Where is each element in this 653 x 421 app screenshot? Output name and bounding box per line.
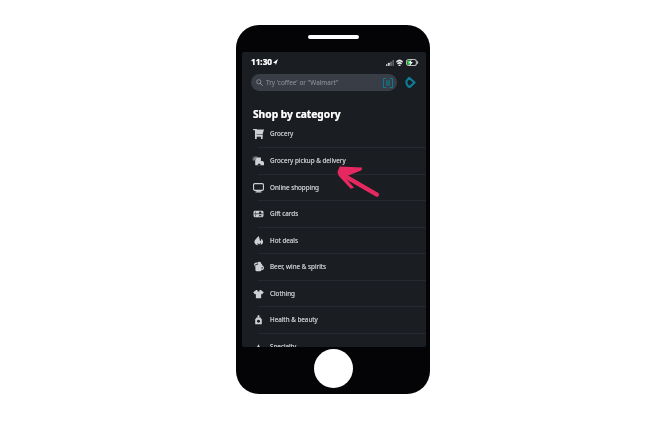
button[interactable]: Specialty bbox=[242, 333, 426, 347]
button[interactable]: Try 'coffee' or "Walmart" bbox=[251, 74, 397, 91]
button[interactable]: Hot deals bbox=[242, 227, 426, 254]
staticText: Online shopping bbox=[270, 183, 319, 192]
staticText: Hot deals bbox=[270, 236, 298, 245]
staticText: Clothing bbox=[270, 289, 295, 298]
button[interactable]: Health & beauty bbox=[242, 306, 426, 333]
staticText: Try 'coffee' or "Walmart" bbox=[266, 78, 339, 87]
staticText: 11:30 bbox=[251, 56, 273, 67]
staticText: Health & beauty bbox=[270, 315, 318, 324]
staticText: Shop by category bbox=[253, 107, 341, 121]
button[interactable]: Home bbox=[314, 349, 353, 388]
staticText: Grocery pickup & delivery bbox=[270, 156, 346, 165]
button[interactable]: Voice assistant bbox=[405, 77, 415, 88]
button[interactable]: Online shopping bbox=[242, 174, 426, 201]
button[interactable]: Beer, wine & spirits bbox=[242, 253, 426, 280]
button[interactable]: Grocery bbox=[242, 120, 426, 147]
button[interactable]: Clothing bbox=[242, 280, 426, 307]
button[interactable]: Gift cards bbox=[242, 200, 426, 227]
button[interactable]: Scan barcode bbox=[383, 78, 393, 88]
staticText: Grocery bbox=[270, 129, 294, 138]
staticText: Beer, wine & spirits bbox=[270, 262, 327, 271]
staticText: Gift cards bbox=[270, 209, 299, 218]
staticText: Specialty bbox=[270, 342, 297, 347]
button[interactable]: Grocery pickup & delivery bbox=[242, 147, 426, 174]
